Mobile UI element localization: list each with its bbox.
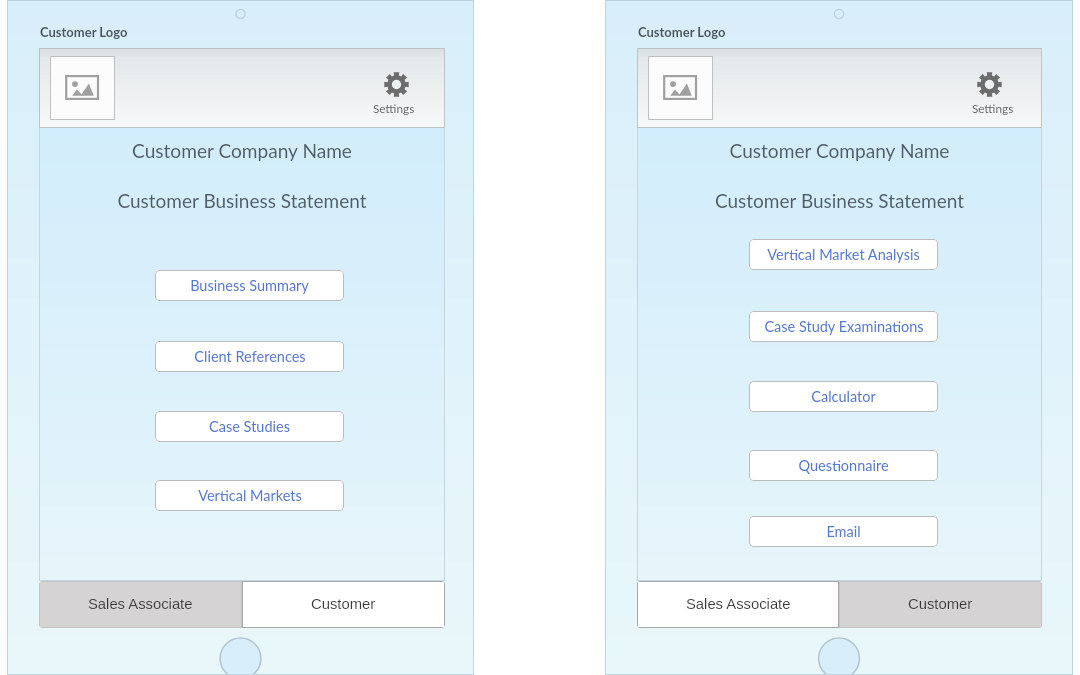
staticText: Customer Logo bbox=[40, 24, 128, 40]
staticText: Calculator bbox=[811, 388, 876, 405]
staticText: Customer bbox=[311, 596, 376, 613]
button[interactable]: Sales Associate bbox=[39, 581, 242, 628]
button[interactable]: Sales Associate bbox=[637, 581, 839, 628]
button[interactable]: Customer bbox=[839, 581, 1042, 628]
button[interactable]: Client References bbox=[155, 341, 344, 372]
staticText: Business Summary bbox=[190, 277, 309, 294]
staticText: Settings bbox=[373, 101, 415, 115]
button[interactable]: Case Studies bbox=[155, 411, 344, 442]
button[interactable]: Questionnaire bbox=[749, 450, 938, 481]
staticText: Vertical Markets bbox=[198, 487, 302, 504]
staticText: Vertical Market Analysis bbox=[767, 246, 920, 263]
staticText: Client References bbox=[194, 348, 306, 365]
button[interactable]: Settings bbox=[967, 72, 1019, 115]
button[interactable]: Vertical Market Analysis bbox=[749, 239, 938, 270]
staticText: Questionnaire bbox=[798, 457, 889, 474]
button[interactable]: Case Study Examinations bbox=[749, 311, 938, 342]
staticText: Customer Logo bbox=[638, 24, 726, 40]
staticText: Sales Associate bbox=[686, 596, 791, 613]
staticText: Case Study Examinations bbox=[764, 318, 924, 335]
button[interactable]: Calculator bbox=[749, 381, 938, 412]
button[interactable]: Customer bbox=[242, 581, 445, 628]
staticText: Customer Company Name bbox=[637, 139, 1042, 162]
button[interactable]: Vertical Markets bbox=[155, 480, 344, 511]
staticText: Case Studies bbox=[209, 418, 290, 435]
staticText: Customer Company Name bbox=[39, 139, 445, 162]
staticText: Settings bbox=[972, 101, 1014, 115]
staticText: Email bbox=[826, 523, 861, 540]
button[interactable]: Settings bbox=[368, 72, 420, 115]
button[interactable]: Email bbox=[749, 516, 938, 547]
staticText: Customer bbox=[908, 596, 973, 613]
staticText: Sales Associate bbox=[88, 596, 193, 613]
staticText: Customer Business Statement bbox=[637, 189, 1042, 212]
button[interactable]: Business Summary bbox=[155, 270, 344, 301]
staticText: Customer Business Statement bbox=[39, 189, 445, 212]
